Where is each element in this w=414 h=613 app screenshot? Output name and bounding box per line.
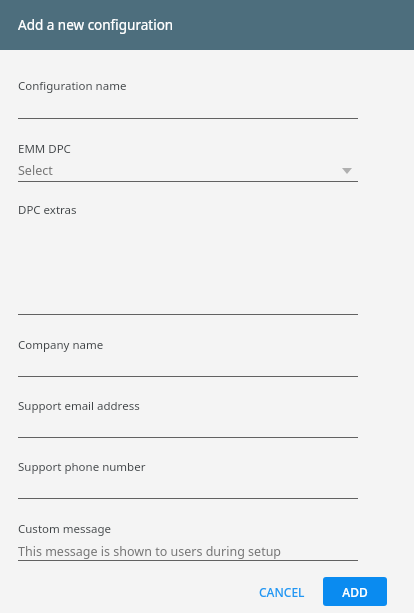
staticText: DPC extras [18,202,77,218]
staticText: Company name [18,337,104,353]
staticText: This message is shown to users during se… [18,543,282,560]
button[interactable]: This message is shown to users during se… [18,542,358,560]
staticText: Support phone number [18,459,146,475]
button[interactable] [18,92,358,119]
staticText: CANCEL [259,584,305,600]
button[interactable]: CANCEL [251,578,313,606]
staticText: Configuration name [18,78,127,94]
staticText: ADD [342,584,368,600]
staticText: EMM DPC [18,141,71,157]
staticText: Add a new configuration [18,16,174,34]
button[interactable] [18,351,358,377]
staticText: Custom message [18,521,111,537]
button[interactable]: ADD [323,577,387,606]
button[interactable] [18,412,358,438]
staticText: Support email address [18,398,140,414]
button[interactable] [18,473,358,499]
button[interactable]: Select [18,160,358,181]
staticText: Select [18,162,53,179]
